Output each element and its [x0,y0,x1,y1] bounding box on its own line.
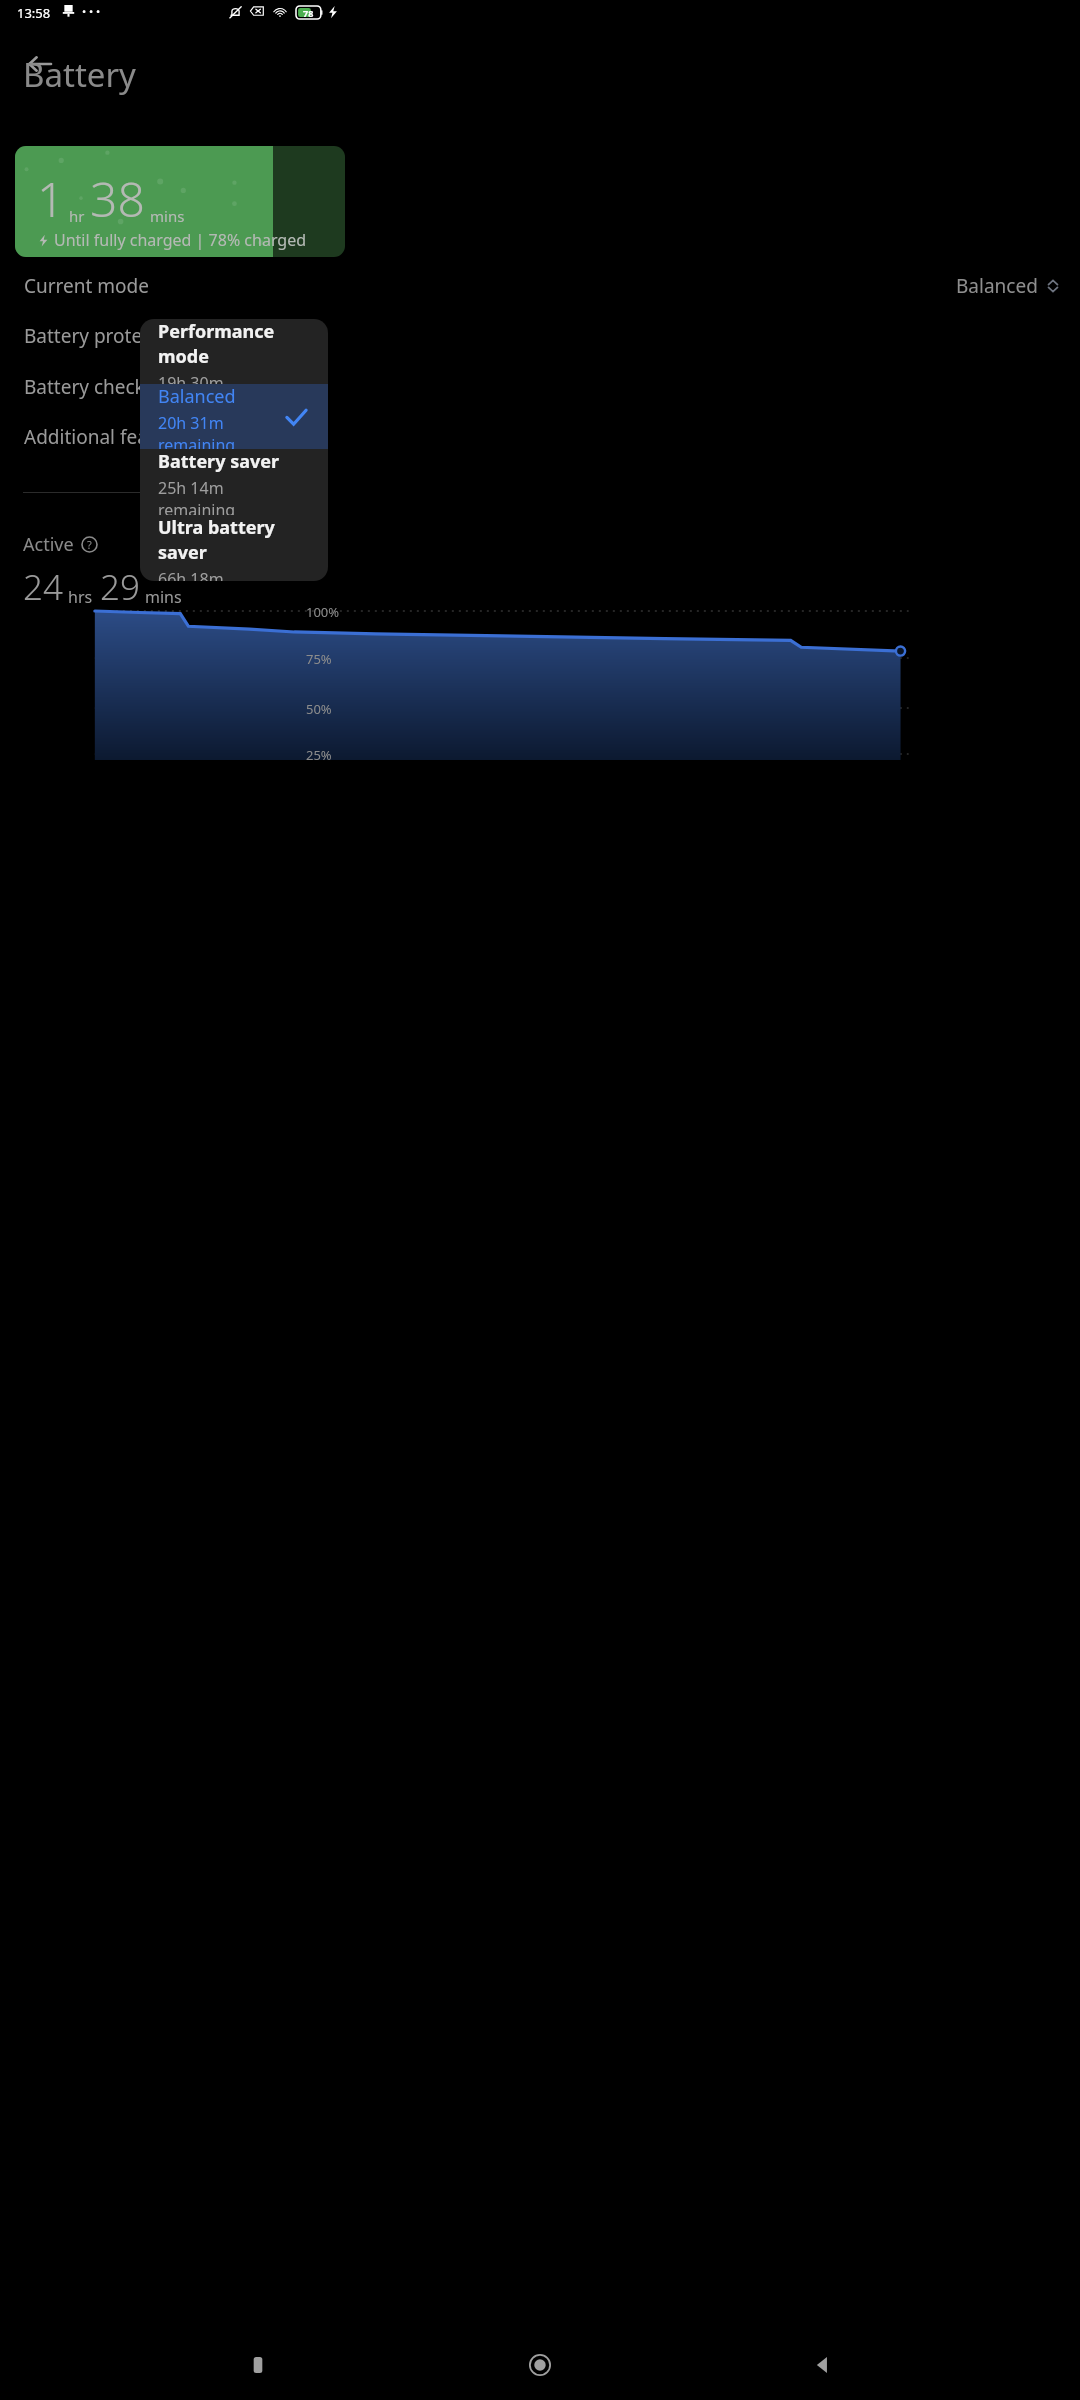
staticText: 100% [306,603,340,621]
button[interactable]: Battery protection [0,311,1080,361]
button[interactable]: Battery saver [140,449,328,515]
button[interactable]: Performance mode [140,319,328,384]
button[interactable]: Additional features [0,412,1080,462]
button[interactable]: Ultra battery saver [140,515,328,581]
staticText: hr [69,206,85,226]
staticText: Balanced [956,273,1038,299]
staticText: Additional features [24,424,194,450]
staticText: ? [87,537,92,552]
staticText: Battery [23,52,136,97]
staticText: Performance mode [158,319,284,369]
button[interactable]: 1 [15,146,345,257]
staticText: 20h 31m remaining [158,412,284,449]
staticText: Battery check-up [24,374,175,400]
staticText: 24 [23,563,63,611]
staticText: 38 [90,166,145,231]
button[interactable]: Home [515,2340,565,2390]
staticText: 50% [306,700,332,718]
button[interactable]: Balanced [140,384,328,449]
staticText: 66h 18m remaining [158,568,284,581]
staticText: 25% [306,746,332,764]
button[interactable]: Recents [233,2340,283,2390]
staticText: Until fully charged | 78% charged [54,229,307,251]
button[interactable]: Back [18,42,62,86]
staticText: Active [23,532,74,557]
staticText: Battery saver [158,449,280,474]
staticText: 13:58 [17,4,51,22]
staticText: 78 [303,7,314,19]
button[interactable]: Current mode [0,261,1080,311]
staticText: Balanced [158,384,236,409]
staticText: mins [150,206,185,226]
button[interactable]: Back [798,2340,848,2390]
staticText: Current mode [24,273,149,299]
staticText: hrs [68,586,93,608]
staticText: 19h 30m remaining [158,372,284,384]
staticText: 29 [100,563,140,611]
staticText: 25h 14m remaining [158,477,284,515]
staticText: Battery protection [24,323,187,349]
staticText: 75% [306,650,332,668]
staticText: • • • [82,4,101,19]
staticText: mins [145,586,182,608]
staticText: Ultra battery saver [158,515,284,565]
staticText: 1 [37,166,65,231]
button[interactable]: Battery check-up [0,362,1080,412]
